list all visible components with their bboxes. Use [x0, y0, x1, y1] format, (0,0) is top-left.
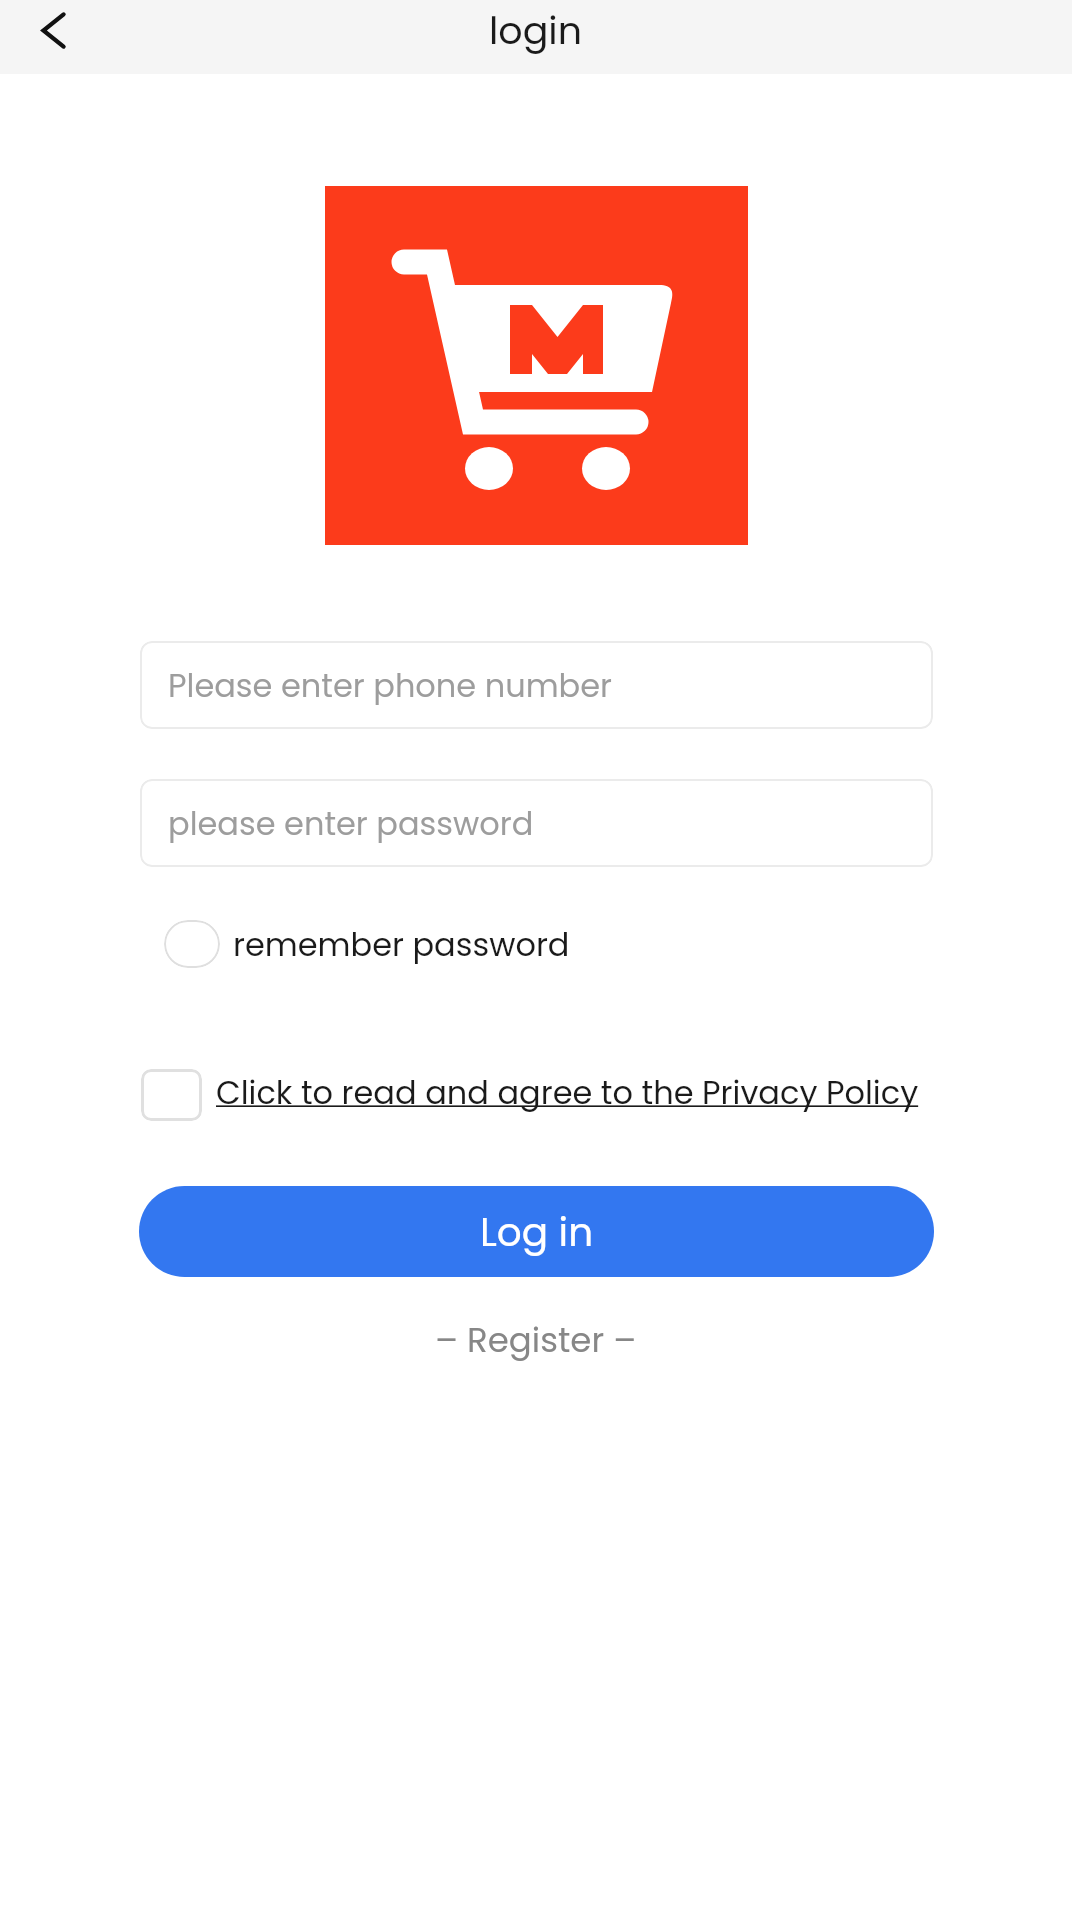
button[interactable]: remember password	[164, 920, 570, 968]
staticText: please enter password	[168, 801, 534, 846]
staticText: Please enter phone number	[168, 663, 613, 708]
staticText: Click to read and agree to the Privacy P…	[216, 1070, 919, 1115]
staticText: remember password	[233, 922, 570, 967]
staticText: login	[489, 4, 583, 57]
button[interactable]: Click to read and agree to the Privacy P…	[141, 1069, 919, 1121]
button[interactable]: Back	[0, 0, 107, 74]
button[interactable]: Please enter phone number	[140, 641, 933, 729]
button[interactable]: – Register –	[411, 1310, 661, 1370]
staticText: – Register –	[435, 1316, 637, 1364]
button[interactable]: Log in	[139, 1186, 934, 1277]
button[interactable]: please enter password	[140, 779, 933, 867]
staticText: Log in	[480, 1205, 594, 1260]
